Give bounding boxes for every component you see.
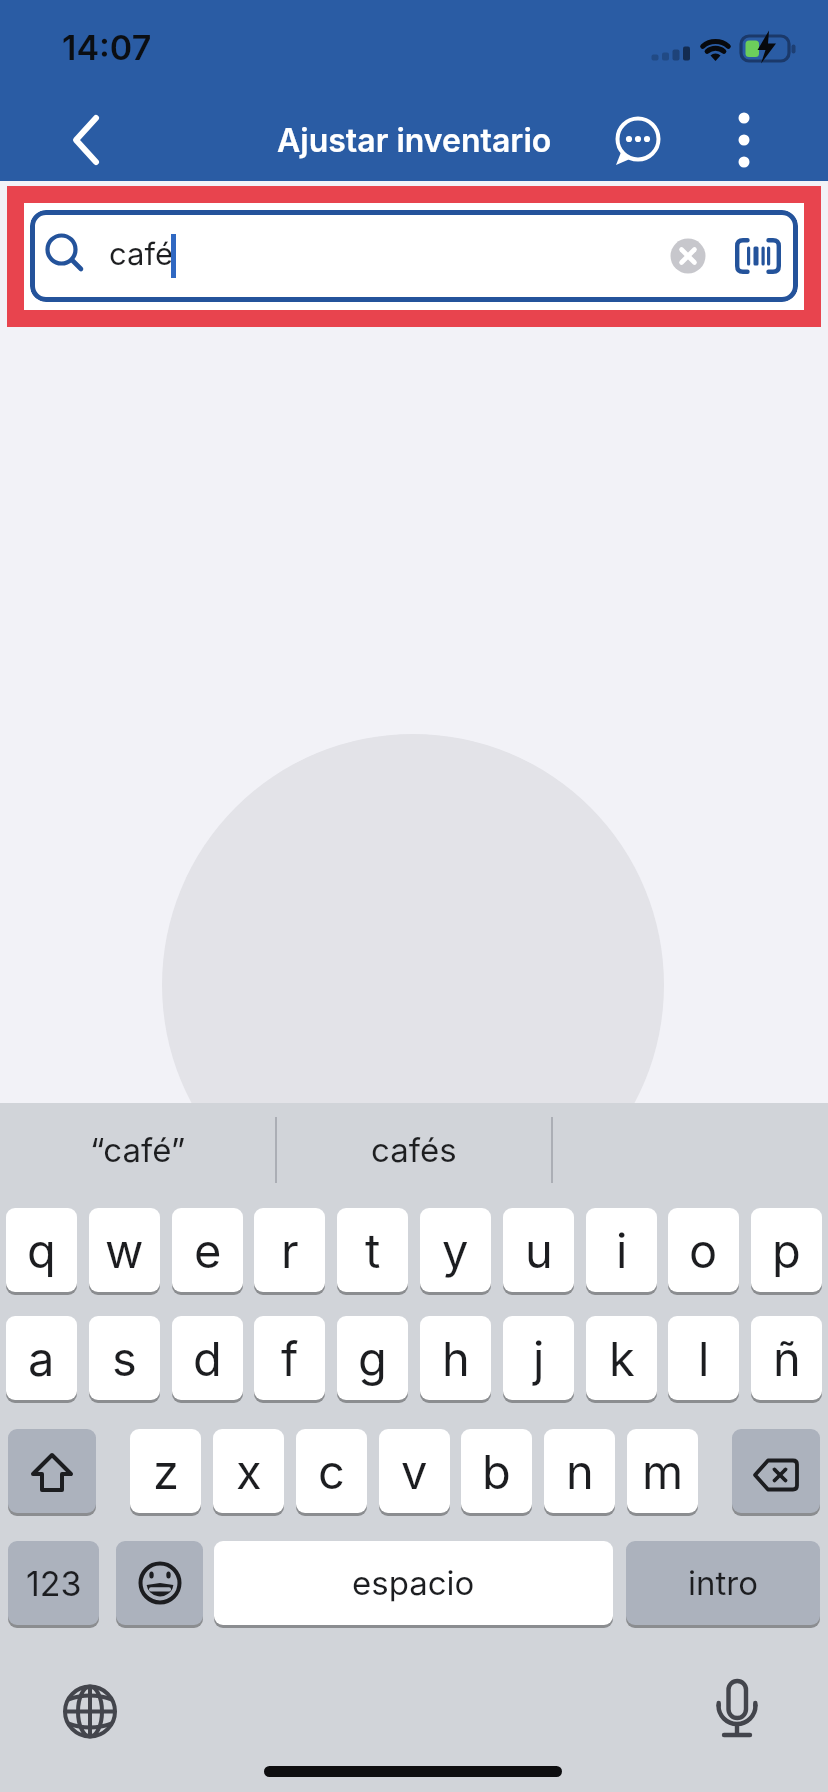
button[interactable] <box>734 236 782 276</box>
staticText: k <box>609 1330 635 1387</box>
button[interactable] <box>706 1678 770 1742</box>
staticText: q <box>27 1222 56 1279</box>
staticText: z <box>153 1443 179 1500</box>
button[interactable]: n <box>544 1429 615 1513</box>
button[interactable]: m <box>627 1429 698 1513</box>
button[interactable]: p <box>751 1208 822 1292</box>
button[interactable] <box>606 108 670 172</box>
button[interactable] <box>716 112 772 168</box>
button[interactable] <box>8 1429 96 1513</box>
button[interactable]: q <box>6 1208 77 1292</box>
staticText: o <box>689 1222 718 1279</box>
button[interactable]: b <box>461 1429 532 1513</box>
staticText: “café” <box>90 1130 186 1170</box>
staticText: cafés <box>371 1130 457 1170</box>
button[interactable]: z <box>130 1429 201 1513</box>
button[interactable]: d <box>172 1316 243 1400</box>
staticText: espacio <box>352 1563 475 1603</box>
staticText: r <box>281 1222 299 1279</box>
staticText: 14:07 <box>62 27 152 68</box>
staticText: y <box>442 1222 469 1279</box>
button[interactable]: y <box>420 1208 491 1292</box>
button[interactable] <box>30 210 798 302</box>
button[interactable]: w <box>89 1208 160 1292</box>
staticText: b <box>482 1443 511 1500</box>
button[interactable]: k <box>586 1316 657 1400</box>
button[interactable]: cafés <box>276 1103 552 1197</box>
staticText: Ajustar inventario <box>277 121 552 160</box>
button[interactable] <box>732 1429 820 1513</box>
button[interactable]: o <box>668 1208 739 1292</box>
button[interactable]: 123 <box>8 1541 99 1625</box>
staticText: café <box>109 235 174 273</box>
button[interactable]: t <box>337 1208 408 1292</box>
button[interactable]: c <box>296 1429 367 1513</box>
button[interactable]: g <box>337 1316 408 1400</box>
button[interactable]: x <box>213 1429 284 1513</box>
button[interactable]: espacio <box>214 1541 613 1625</box>
button[interactable]: l <box>668 1316 739 1400</box>
staticText: t <box>365 1222 381 1279</box>
staticText: l <box>698 1330 710 1387</box>
staticText: h <box>442 1330 470 1387</box>
staticText: a <box>28 1330 55 1387</box>
staticText: 123 <box>26 1563 82 1604</box>
button[interactable]: a <box>6 1316 77 1400</box>
staticText: i <box>616 1222 628 1279</box>
staticText: j <box>533 1330 545 1387</box>
button[interactable]: intro <box>626 1541 820 1625</box>
button[interactable]: h <box>420 1316 491 1400</box>
staticText: g <box>358 1330 387 1387</box>
button[interactable]: s <box>89 1316 160 1400</box>
button[interactable]: “café” <box>0 1103 276 1197</box>
button[interactable] <box>56 110 116 170</box>
staticText: p <box>772 1222 801 1279</box>
staticText: s <box>112 1330 137 1387</box>
staticText: d <box>193 1330 222 1387</box>
button[interactable]: j <box>503 1316 574 1400</box>
staticText: m <box>642 1443 684 1500</box>
staticText: u <box>525 1222 553 1279</box>
button[interactable] <box>116 1541 203 1625</box>
button[interactable]: e <box>172 1208 243 1292</box>
staticText: x <box>236 1443 262 1500</box>
button[interactable] <box>667 235 709 277</box>
staticText: intro <box>688 1563 758 1603</box>
staticText: n <box>566 1443 594 1500</box>
button[interactable]: r <box>254 1208 325 1292</box>
staticText: w <box>105 1222 144 1279</box>
button[interactable] <box>58 1680 122 1744</box>
button[interactable]: i <box>586 1208 657 1292</box>
staticText: e <box>194 1222 222 1279</box>
button[interactable]: ñ <box>751 1316 822 1400</box>
button[interactable]: v <box>379 1429 450 1513</box>
staticText: c <box>318 1443 345 1500</box>
staticText: f <box>281 1330 299 1387</box>
staticText: v <box>401 1443 428 1500</box>
button[interactable]: u <box>503 1208 574 1292</box>
button[interactable]: f <box>254 1316 325 1400</box>
staticText: ñ <box>773 1330 801 1387</box>
